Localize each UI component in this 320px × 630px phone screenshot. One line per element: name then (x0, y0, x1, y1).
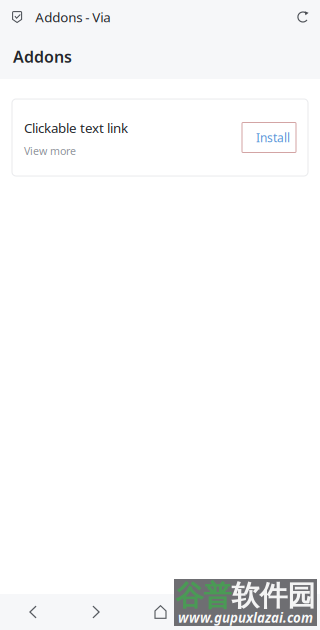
button[interactable]: Install (242, 122, 296, 152)
button[interactable]: Forward (64, 594, 128, 630)
button[interactable]: Addons - Via (0, 0, 148, 34)
staticText: Install (256, 129, 290, 145)
staticText: View more (24, 144, 76, 158)
staticText: www.gupuxlazai.com (178, 609, 313, 626)
button[interactable]: Refresh (297, 0, 320, 34)
button[interactable]: Back (0, 594, 64, 630)
staticText: Addons (13, 46, 72, 67)
staticText: 谷普 (175, 579, 231, 613)
button[interactable]: Home (128, 594, 192, 630)
staticText: Addons - Via (35, 8, 110, 26)
staticText: 软件园 (231, 579, 315, 613)
staticText: Clickable text link (24, 119, 128, 137)
